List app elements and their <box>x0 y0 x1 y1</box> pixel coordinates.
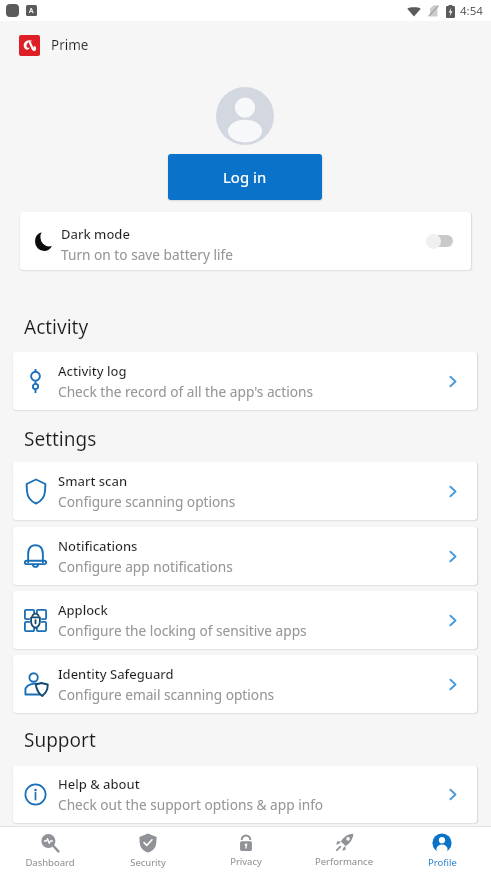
staticText: Activity log <box>58 362 127 380</box>
staticText: Notifications <box>58 537 138 555</box>
staticText: Dark mode <box>61 225 130 243</box>
button[interactable]: Identity Safeguard <box>13 655 477 713</box>
button[interactable]: Profile <box>393 827 491 874</box>
staticText: 4:54 <box>460 3 483 19</box>
staticText: Performance <box>315 855 373 868</box>
staticText: Check the record of all the app's action… <box>58 382 313 401</box>
staticText: Configure app notifications <box>58 557 233 576</box>
button[interactable]: Performance <box>295 827 393 874</box>
button[interactable]: Smart scan <box>13 462 477 520</box>
staticText: Support <box>24 727 96 753</box>
staticText: A <box>29 6 34 16</box>
staticText: Log in <box>223 167 267 187</box>
staticText: Turn on to save battery life <box>61 245 233 264</box>
staticText: Dashboard <box>25 856 75 869</box>
button[interactable]: Log in <box>168 154 322 200</box>
button[interactable]: Applock <box>13 591 477 649</box>
staticText: Configure the locking of sensitive apps <box>58 621 307 640</box>
staticText: Profile <box>428 856 457 869</box>
button[interactable]: Activity log <box>13 352 477 410</box>
staticText: Configure scanning options <box>58 492 236 511</box>
staticText: Privacy <box>230 855 262 868</box>
button[interactable]: Notifications <box>13 527 477 585</box>
staticText: Security <box>130 856 166 869</box>
staticText: Settings <box>24 426 97 452</box>
staticText: Prime <box>51 36 89 54</box>
staticText: Help & about <box>58 775 140 793</box>
staticText: Check out the support options & app info <box>58 795 324 814</box>
staticText: Configure email scanning options <box>58 685 275 704</box>
button[interactable]: Security <box>99 827 197 874</box>
button[interactable]: Privacy <box>197 827 295 874</box>
staticText: Applock <box>58 601 108 619</box>
staticText: Smart scan <box>58 472 128 490</box>
button[interactable]: Help & about <box>13 766 477 823</box>
staticText: Activity <box>24 314 89 340</box>
staticText: Identity Safeguard <box>58 665 174 683</box>
button[interactable]: Dashboard <box>0 827 99 874</box>
button[interactable]: Dark mode <box>20 212 471 270</box>
